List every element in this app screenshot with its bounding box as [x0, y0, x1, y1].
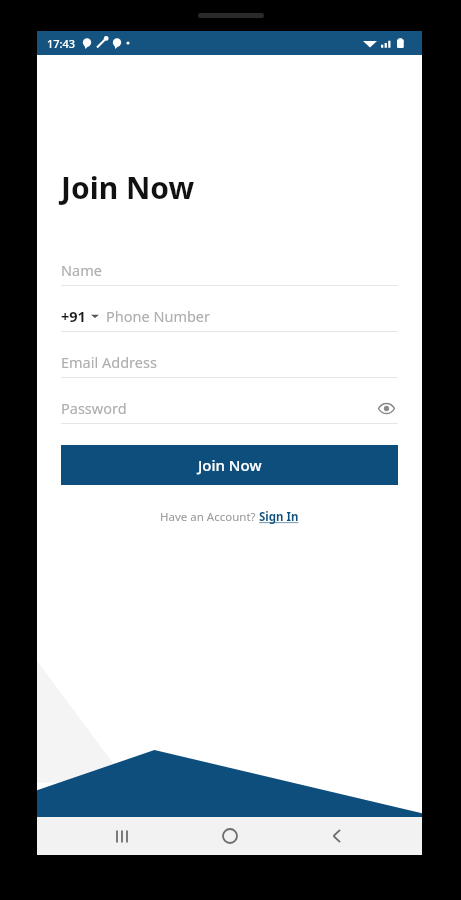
button[interactable]: Name: [61, 255, 398, 286]
button[interactable]: +91: [61, 301, 398, 332]
staticText: Name: [61, 260, 102, 280]
button[interactable]: Sign In: [259, 509, 299, 525]
button[interactable]: Email Address: [61, 347, 398, 378]
button[interactable]: Show password: [374, 396, 398, 420]
staticText: Phone Number: [106, 306, 211, 326]
button[interactable]: Recent apps: [100, 817, 144, 855]
button[interactable]: Join Now: [61, 445, 398, 485]
staticText: Sign In: [259, 509, 299, 525]
staticText: +91: [61, 306, 86, 326]
button[interactable]: Back: [315, 817, 359, 855]
button[interactable]: Password: [61, 393, 398, 423]
staticText: Join Now: [61, 167, 195, 208]
staticText: Password: [61, 398, 127, 418]
staticText: Join Now: [198, 455, 262, 475]
button[interactable]: Home: [208, 817, 252, 855]
staticText: 17:43: [47, 36, 76, 51]
staticText: Email Address: [61, 352, 157, 372]
staticText: Have an Account?: [160, 509, 259, 525]
